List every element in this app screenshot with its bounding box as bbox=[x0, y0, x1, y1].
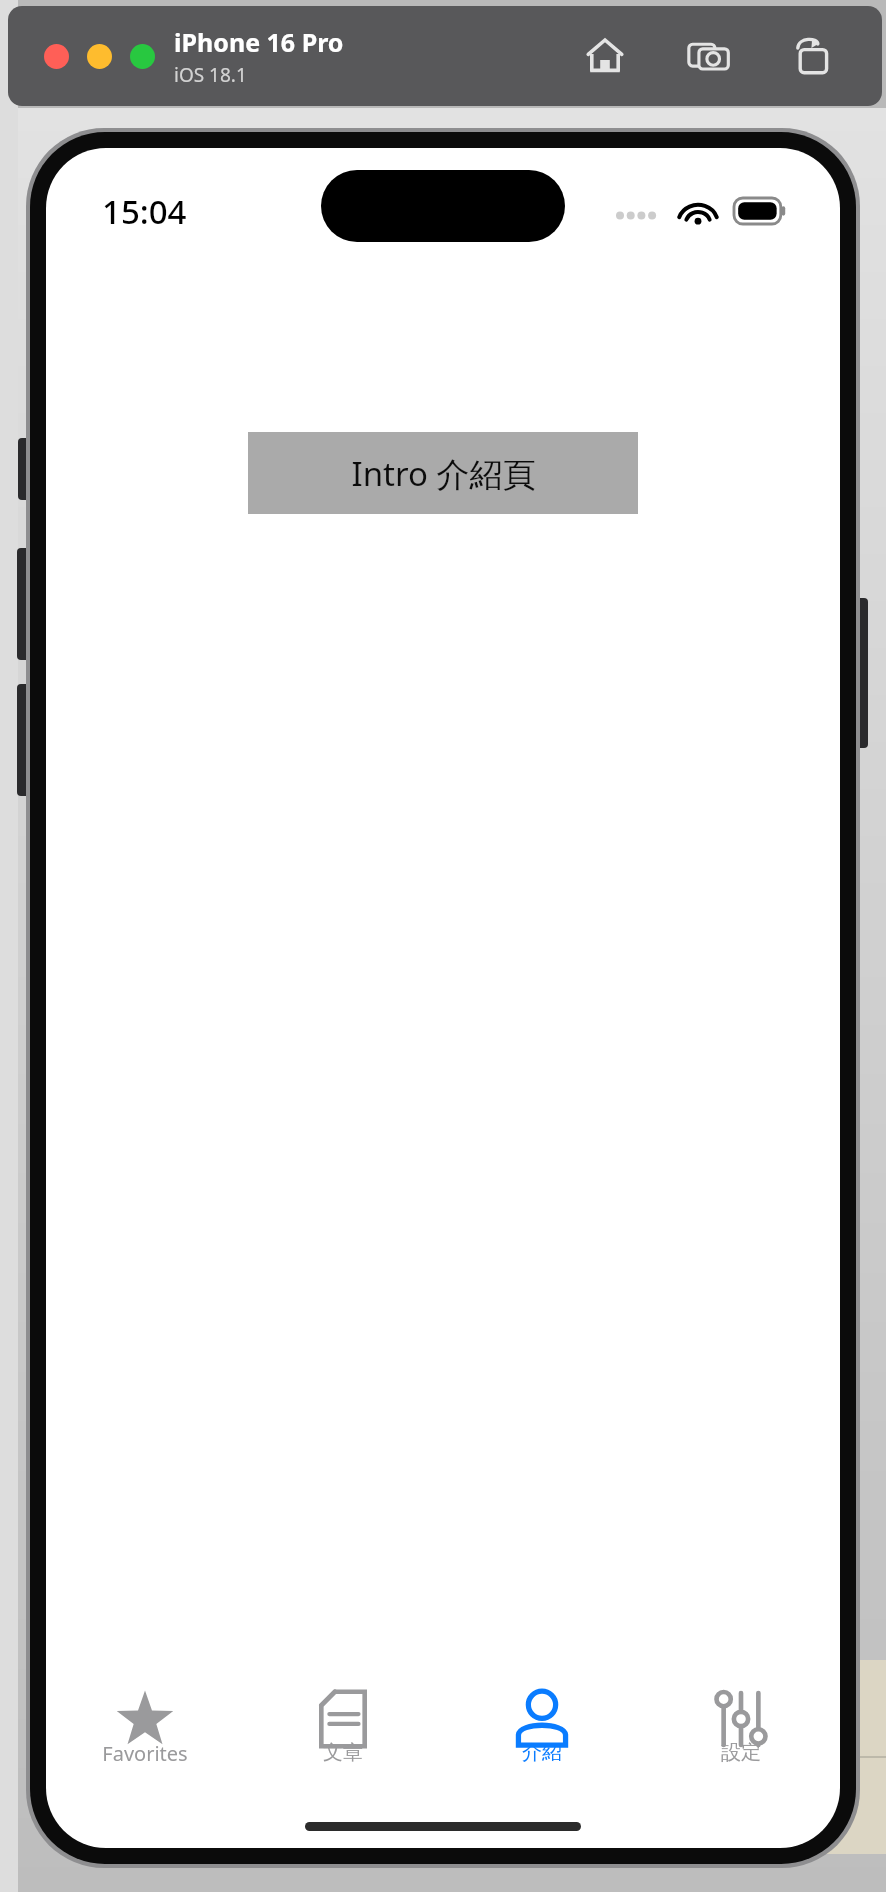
button[interactable]: 介紹 bbox=[442, 1672, 641, 1804]
staticText: iOS 18.1 bbox=[174, 62, 247, 88]
button[interactable]: Favorites bbox=[46, 1672, 244, 1804]
button[interactable]: Intro 介紹頁 bbox=[248, 432, 638, 514]
staticText: 介紹 bbox=[522, 1740, 562, 1765]
button[interactable]: Screenshot bbox=[680, 27, 738, 85]
button[interactable]: 文章 bbox=[244, 1672, 442, 1804]
staticText: 文章 bbox=[323, 1740, 363, 1765]
button[interactable]: Zoom bbox=[130, 44, 155, 69]
button[interactable]: Home bbox=[576, 27, 634, 85]
staticText: Favorites bbox=[102, 1740, 188, 1767]
button[interactable]: Rotate bbox=[784, 27, 842, 85]
staticText: iPhone 16 Pro bbox=[174, 25, 344, 59]
button[interactable]: Minimise bbox=[87, 44, 112, 69]
staticText: Intro 介紹頁 bbox=[351, 451, 536, 496]
button[interactable]: Close bbox=[44, 44, 69, 69]
staticText: 設定 bbox=[721, 1740, 761, 1765]
staticText: 15:04 bbox=[102, 189, 187, 234]
button[interactable]: 設定 bbox=[641, 1672, 840, 1804]
